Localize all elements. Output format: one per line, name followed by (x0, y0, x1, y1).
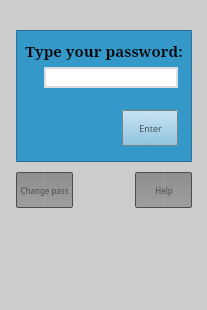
button[interactable]: Change pass (16, 172, 73, 208)
button[interactable]: Help (135, 172, 192, 208)
staticText: Enter (139, 122, 162, 134)
staticText: Change pass (20, 185, 69, 196)
staticText: Type your password: (25, 41, 183, 61)
staticText: Help (155, 185, 173, 196)
button[interactable] (44, 67, 178, 88)
button[interactable]: Enter (122, 110, 178, 146)
